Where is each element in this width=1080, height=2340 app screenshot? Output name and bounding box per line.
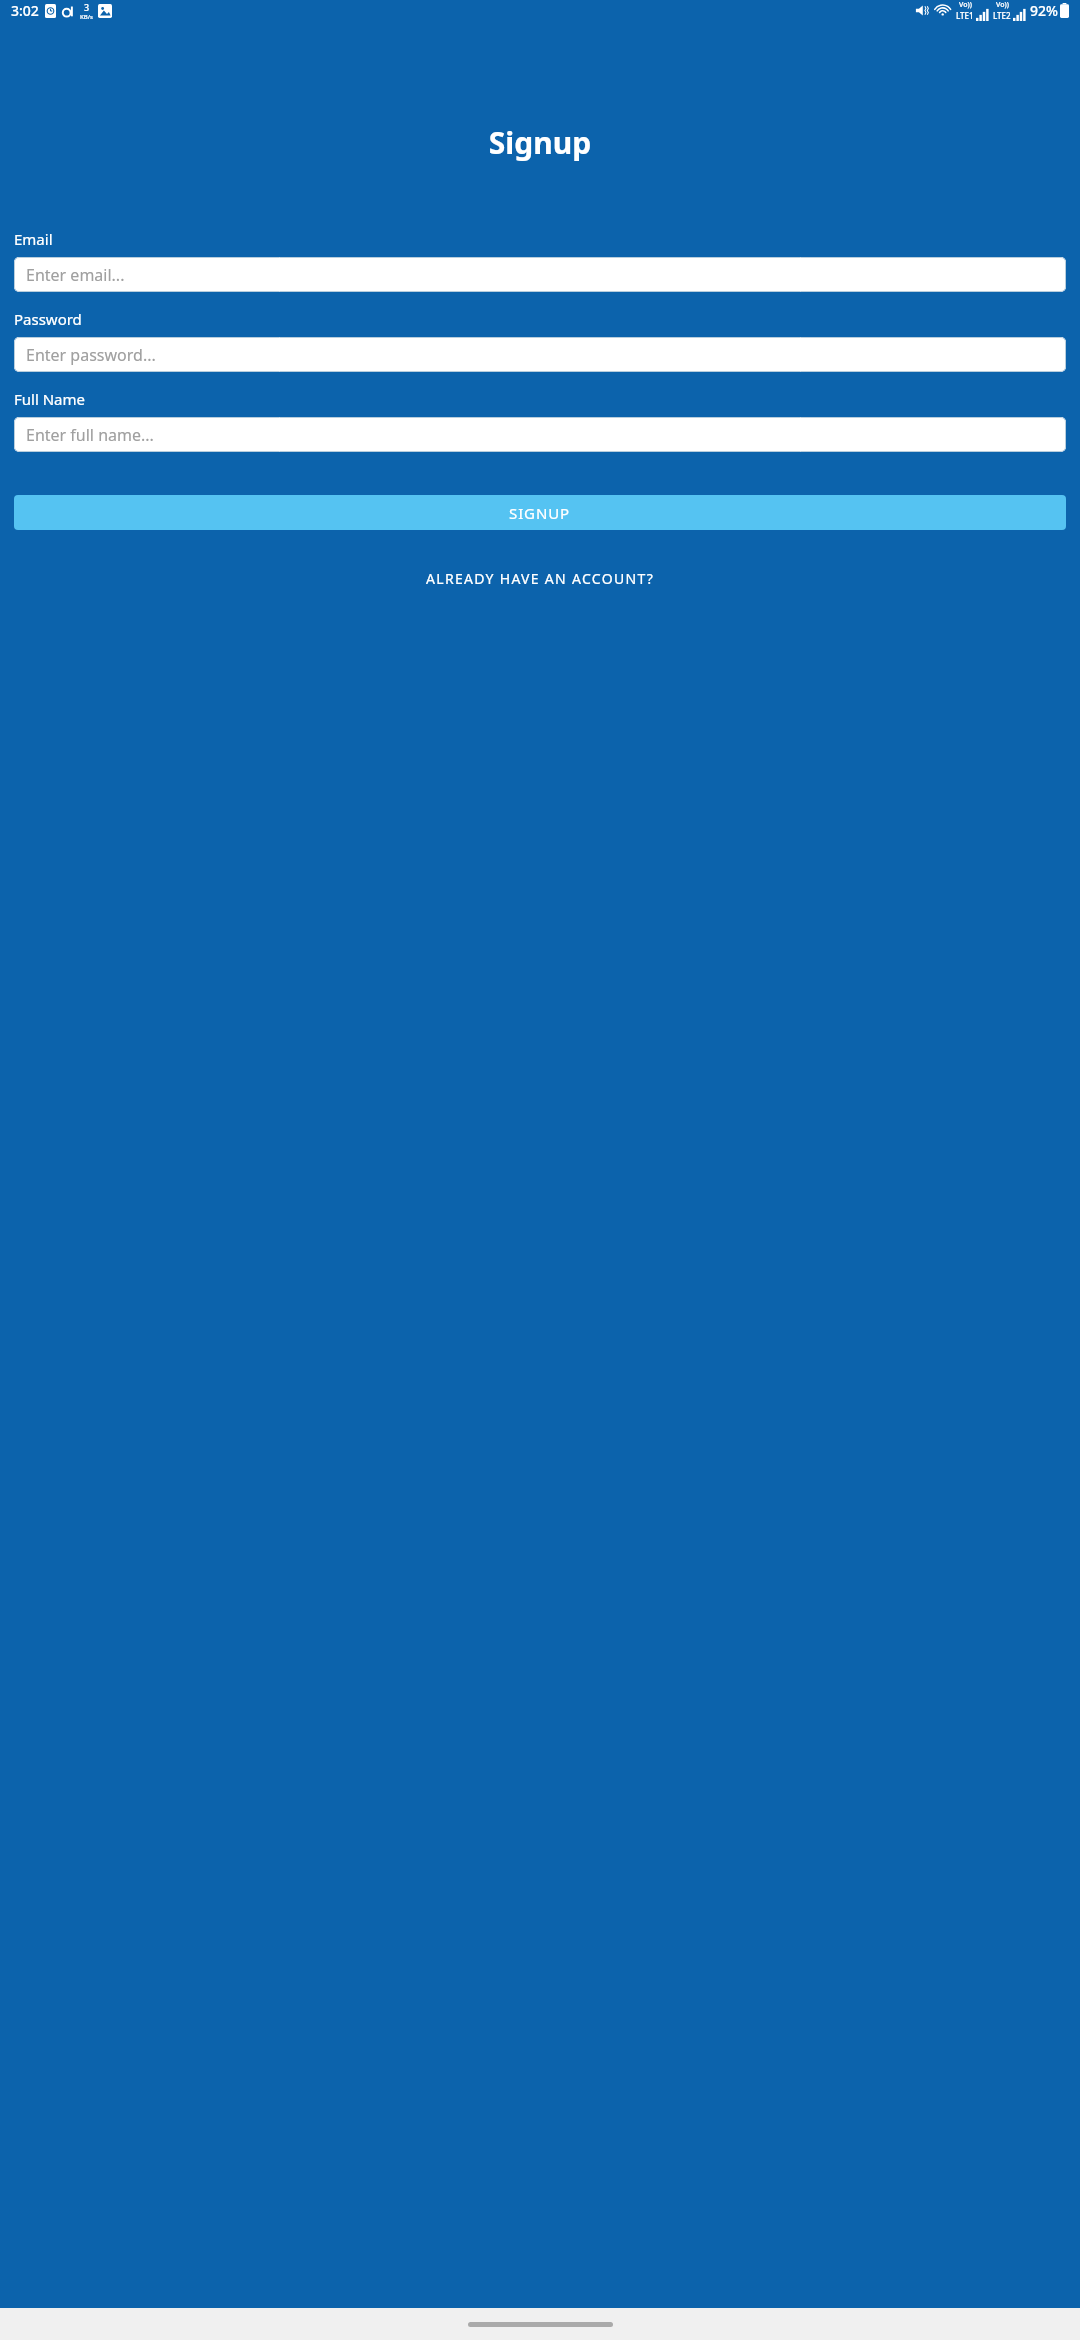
button[interactable]: Enter email...	[14, 257, 1066, 292]
button[interactable]: Enter password...	[14, 337, 1066, 372]
staticText: LTE1	[956, 10, 974, 21]
staticText: 92%	[1030, 1, 1058, 20]
staticText: Enter full name...	[26, 424, 154, 446]
staticText: Email	[14, 229, 53, 249]
staticText: Enter password...	[26, 344, 156, 366]
staticText: Password	[14, 309, 82, 329]
staticText: Signup	[0, 122, 1080, 163]
staticText: 3:02	[11, 1, 39, 20]
staticText: KB/s	[80, 13, 93, 21]
staticText: Vo))	[959, 0, 972, 10]
staticText: SIGNUP	[509, 503, 571, 523]
staticText: 3	[84, 1, 90, 13]
staticText: ALREADY HAVE AN ACCOUNT?	[426, 569, 655, 588]
other: Home gesture	[468, 2322, 613, 2327]
staticText: Full Name	[14, 389, 85, 409]
button[interactable]: SIGNUP	[14, 495, 1066, 530]
staticText: Vo))	[996, 0, 1009, 10]
staticText: Enter email...	[26, 264, 125, 286]
button[interactable]: ALREADY HAVE AN ACCOUNT?	[14, 562, 1066, 594]
staticText: LTE2	[993, 10, 1011, 21]
button[interactable]: Enter full name...	[14, 417, 1066, 452]
